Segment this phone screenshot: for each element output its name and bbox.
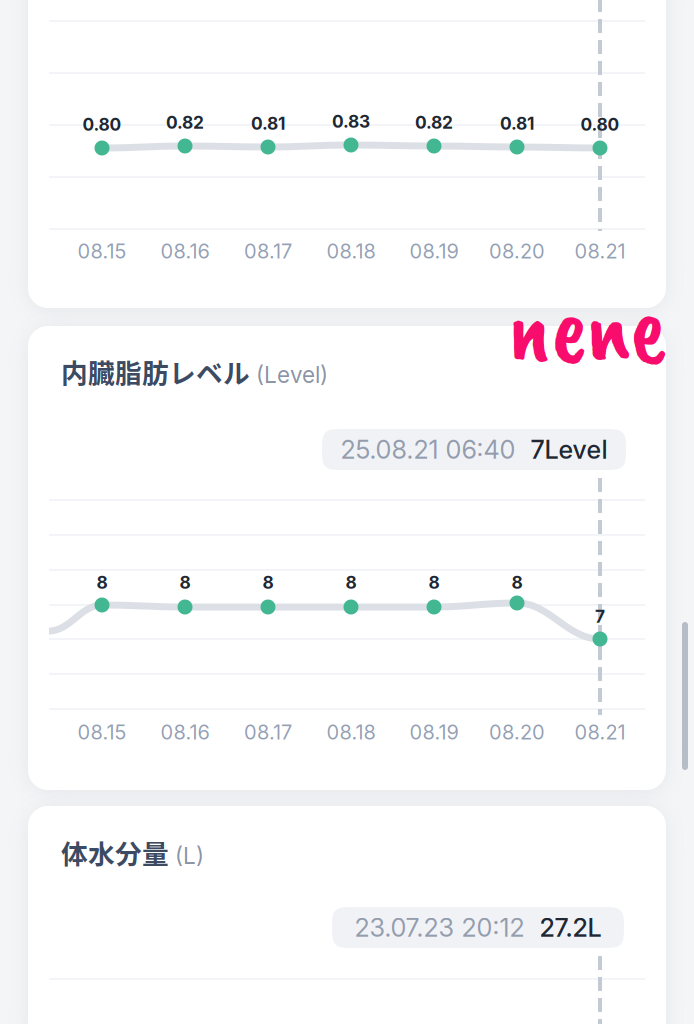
staticText: 8 [262,572,273,593]
staticText: 0.80 [580,114,619,135]
staticText: 08.18 [326,239,375,263]
staticText: 08.19 [409,239,458,263]
staticText: 8 [96,572,107,593]
staticText: 0.82 [415,112,453,133]
staticText: 8 [511,572,522,593]
staticText: 08.15 [77,239,126,263]
staticText: 08.20 [489,239,545,263]
staticText: 08.16 [160,239,209,263]
staticText: 0.83 [332,111,370,132]
staticText: 23.07.23 20:12 [354,912,524,943]
staticText: 08.21 [574,720,625,744]
staticText: 0.81 [251,113,285,134]
staticText: 0.80 [82,114,121,135]
staticText: 08.17 [244,720,292,744]
staticText: 0.82 [166,112,204,133]
staticText: 8 [345,572,356,593]
staticText: 08.16 [160,720,209,744]
staticText: 体水分量 [61,833,169,872]
staticText: 0.81 [500,113,534,134]
staticText: (L) [175,842,204,869]
staticText: 08.15 [77,720,126,744]
staticText: 25.08.21 06:40 [340,434,515,465]
staticText: 08.20 [489,720,545,744]
staticText: 7 [595,606,605,627]
staticText: 8 [179,572,190,593]
staticText: 08.19 [409,720,458,744]
staticText: nene [508,267,666,388]
staticText: 08.17 [244,239,292,263]
staticText: 27.2L [539,912,601,943]
staticText: 7Level [530,434,607,465]
staticText: (Level) [256,361,328,388]
staticText: 08.21 [574,239,625,263]
staticText: 8 [428,572,439,593]
staticText: 08.18 [326,720,375,744]
staticText: 内臓脂肪レベル [61,352,250,391]
